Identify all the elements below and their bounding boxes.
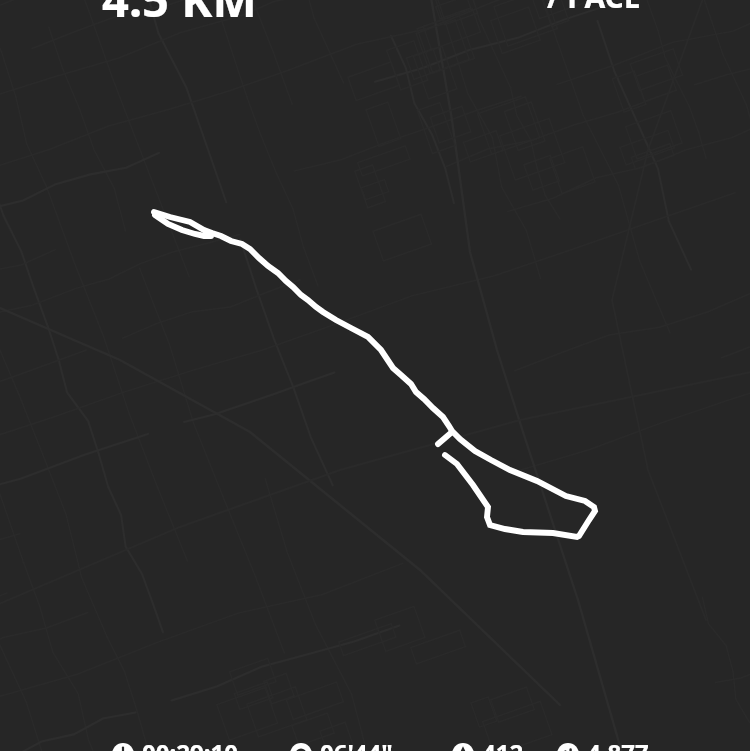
staticText: 00:29:10 (142, 736, 238, 751)
other: 4,877 (557, 743, 579, 751)
button[interactable]: 412 (452, 736, 524, 751)
button[interactable]: 00:29:10 (112, 736, 238, 751)
staticText: 4,877 (587, 736, 649, 751)
staticText: 06'44" (320, 736, 393, 751)
staticText: 4.5 KM (102, 0, 257, 31)
button[interactable]: 06'44" (290, 736, 393, 751)
other: 00:29:10 (112, 743, 134, 751)
button[interactable]: / PACE (547, 0, 641, 17)
button[interactable]: Route map (0, 0, 750, 751)
other: 06'44" (290, 743, 312, 751)
staticText: / PACE (547, 0, 641, 17)
button[interactable]: 4,877 (557, 736, 649, 751)
other: 412 (452, 743, 474, 751)
button[interactable]: 4.5 KM (102, 0, 257, 31)
staticText: 412 (482, 736, 524, 751)
